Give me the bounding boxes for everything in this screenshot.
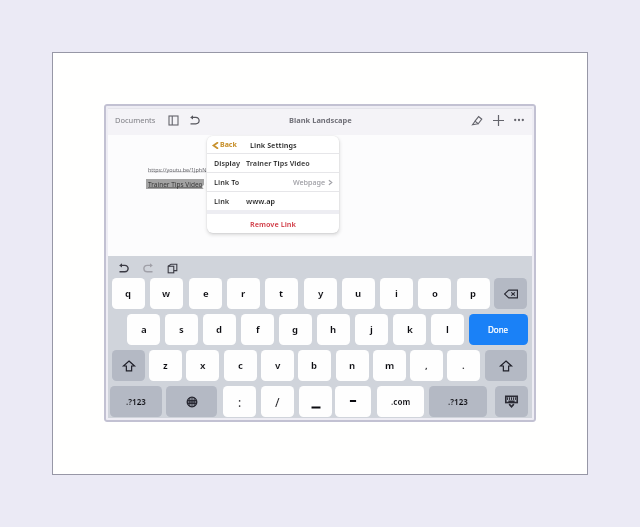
- button[interactable]: h: [317, 314, 350, 345]
- button[interactable]: [299, 386, 332, 417]
- button[interactable]: m: [373, 350, 406, 381]
- button[interactable]: Format: [469, 112, 485, 128]
- staticText: j: [370, 323, 373, 336]
- button[interactable]: t: [265, 278, 298, 309]
- button[interactable]: Backspace: [494, 278, 527, 309]
- button[interactable]: f: [241, 314, 274, 345]
- staticText: b: [311, 359, 318, 372]
- button[interactable]: b: [298, 350, 331, 381]
- button[interactable]: Remove Link: [207, 214, 339, 233]
- button[interactable]: Back: [212, 140, 237, 150]
- button[interactable]: .com: [377, 386, 424, 417]
- button[interactable]: Insert: [490, 112, 506, 128]
- staticText: m: [385, 359, 395, 372]
- staticText: y: [318, 287, 324, 300]
- staticText: Link To: [214, 177, 240, 187]
- button[interactable]: Display: [207, 154, 339, 172]
- staticText: w: [162, 287, 171, 300]
- button[interactable]: k: [393, 314, 426, 345]
- button[interactable]: .?123: [429, 386, 487, 417]
- staticText: /: [275, 394, 280, 410]
- button[interactable]: x: [186, 350, 219, 381]
- button[interactable]: .: [447, 350, 480, 381]
- staticText: www.ap: [246, 196, 276, 206]
- button[interactable]: .?123: [110, 386, 162, 417]
- staticText: f: [256, 323, 260, 336]
- staticText: https://youtu.be/1JphN: [148, 166, 207, 173]
- button[interactable]: Sidebar: [165, 112, 181, 128]
- staticText: Webpage: [293, 177, 325, 187]
- staticText: Link Settings: [250, 140, 297, 150]
- button[interactable]: u: [342, 278, 375, 309]
- staticText: p: [470, 287, 477, 300]
- button[interactable]: Hide keyboard: [495, 386, 528, 417]
- button[interactable]: r: [227, 278, 260, 309]
- button[interactable]: Redo: [140, 260, 156, 276]
- button[interactable]: Undo: [187, 112, 203, 128]
- button[interactable]: w: [150, 278, 183, 309]
- staticText: i: [395, 287, 398, 300]
- button[interactable]: v: [261, 350, 294, 381]
- button[interactable]: l: [431, 314, 464, 345]
- button[interactable]: j: [355, 314, 388, 345]
- staticText: c: [238, 359, 243, 372]
- button[interactable]: Link: [207, 192, 339, 210]
- button[interactable]: More options: [511, 112, 527, 128]
- button[interactable]: Done: [469, 314, 528, 345]
- button[interactable]: Undo: [116, 260, 132, 276]
- button[interactable]: Language: [166, 386, 217, 417]
- button[interactable]: s: [165, 314, 198, 345]
- button[interactable]: i: [380, 278, 413, 309]
- staticText: .?123: [126, 396, 146, 407]
- button[interactable]: a: [127, 314, 160, 345]
- staticText: t: [279, 287, 284, 300]
- staticText: Link: [214, 196, 230, 206]
- button[interactable]: o: [418, 278, 451, 309]
- staticText: u: [355, 287, 362, 300]
- button[interactable]: e: [189, 278, 222, 309]
- staticText: d: [216, 323, 223, 336]
- staticText: h: [330, 323, 337, 336]
- staticText: Trainer Tips Video: [148, 180, 203, 189]
- staticText: Done: [488, 324, 509, 335]
- staticText: e: [203, 287, 209, 300]
- staticText: Documents: [115, 115, 156, 125]
- button[interactable]: :: [223, 386, 256, 417]
- staticText: s: [179, 323, 184, 336]
- staticText: Back: [220, 140, 237, 150]
- staticText: ,: [425, 359, 428, 372]
- button[interactable]: Paste: [164, 260, 180, 276]
- button[interactable]: y: [304, 278, 337, 309]
- button[interactable]: c: [224, 350, 257, 381]
- staticText: :: [238, 394, 242, 410]
- staticText: Remove Link: [250, 219, 296, 229]
- button[interactable]: Shift: [112, 350, 145, 381]
- button[interactable]: [335, 386, 371, 417]
- staticText: Trainer Tips Video: [246, 158, 310, 168]
- staticText: .: [462, 359, 465, 372]
- staticText: Display: [214, 158, 241, 168]
- staticText: Blank Landscape: [289, 115, 352, 125]
- button[interactable]: z: [149, 350, 182, 381]
- button[interactable]: g: [279, 314, 312, 345]
- staticText: n: [349, 359, 356, 372]
- staticText: .?123: [448, 396, 468, 407]
- staticText: o: [432, 287, 438, 300]
- staticText: k: [407, 323, 413, 336]
- button[interactable]: Shift: [485, 350, 527, 381]
- button[interactable]: q: [112, 278, 145, 309]
- staticText: l: [446, 323, 449, 336]
- button[interactable]: n: [336, 350, 369, 381]
- button[interactable]: p: [457, 278, 490, 309]
- button[interactable]: ,: [410, 350, 443, 381]
- staticText: .com: [391, 396, 411, 407]
- staticText: a: [141, 323, 147, 336]
- staticText: z: [163, 359, 168, 372]
- button[interactable]: /: [261, 386, 294, 417]
- staticText: r: [241, 287, 246, 300]
- staticText: g: [292, 323, 299, 336]
- button[interactable]: Link To: [207, 173, 339, 191]
- button[interactable]: d: [203, 314, 236, 345]
- button[interactable]: Documents: [115, 112, 157, 128]
- staticText: x: [200, 359, 206, 372]
